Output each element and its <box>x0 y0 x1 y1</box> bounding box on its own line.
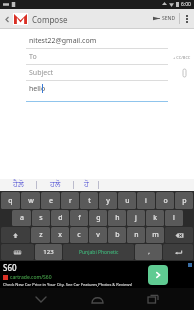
staticText: ਹੋ <box>84 181 89 189</box>
button[interactable]: t <box>80 192 98 209</box>
staticText: nitest22@gmail.com <box>29 36 97 46</box>
button[interactable]: Subject <box>0 65 194 81</box>
staticText: ਹਲੋ <box>50 181 61 189</box>
button[interactable]: ਹਲੋ <box>37 179 73 191</box>
button[interactable]: Attach file <box>179 68 189 78</box>
button[interactable]: , <box>135 244 162 260</box>
staticText: S60 <box>3 262 17 273</box>
staticText: s <box>39 213 43 223</box>
staticText: h <box>115 213 120 223</box>
staticText: c <box>77 230 81 240</box>
staticText: j <box>135 213 137 223</box>
button[interactable]: c <box>70 227 88 243</box>
button[interactable]: f <box>70 210 88 226</box>
button[interactable]: q <box>1 192 20 209</box>
button[interactable]: Switch keyboard <box>1 244 34 260</box>
staticText: 123 <box>43 248 54 256</box>
button[interactable]: p <box>175 192 193 209</box>
button[interactable]: To <box>0 49 194 65</box>
button[interactable]: d <box>51 210 69 226</box>
button[interactable]: z <box>31 227 50 243</box>
staticText: f <box>78 213 81 223</box>
button[interactable]: u <box>118 192 136 209</box>
button[interactable]: More options <box>180 9 194 28</box>
staticText: n <box>134 230 139 240</box>
button[interactable]: Back <box>2 14 12 24</box>
staticText: t <box>88 196 91 206</box>
staticText: a <box>20 213 24 223</box>
staticText: y <box>106 196 110 206</box>
button[interactable]: Enter <box>163 244 193 260</box>
staticText: x <box>58 230 62 240</box>
button[interactable]: n <box>127 227 145 243</box>
staticText: 6:00 <box>181 1 191 8</box>
button[interactable]: Punjabi Phonetic <box>63 244 134 260</box>
staticText: m <box>152 230 159 240</box>
button[interactable]: o <box>156 192 174 209</box>
button[interactable]: g <box>89 210 107 226</box>
button[interactable]: Open ad <box>148 265 168 285</box>
staticText: Subject <box>29 68 54 78</box>
staticText: p <box>182 196 187 206</box>
staticText: l <box>173 213 175 223</box>
staticText: u <box>125 196 130 206</box>
staticText: d <box>58 213 63 223</box>
button[interactable]: Delete <box>165 227 193 243</box>
button[interactable]: s <box>32 210 50 226</box>
button[interactable]: v <box>89 227 107 243</box>
staticText: Compose <box>32 14 68 25</box>
button[interactable]: nitest22@gmail.com <box>0 33 194 49</box>
button[interactable]: m <box>146 227 164 243</box>
staticText: g <box>96 213 101 223</box>
staticText: hello <box>29 84 46 94</box>
button[interactable]: y <box>99 192 117 209</box>
button[interactable]: Home <box>82 288 112 310</box>
button[interactable]: l <box>165 210 183 226</box>
staticText: SEND <box>162 15 176 22</box>
button[interactable]: ਹੋ <box>74 179 98 191</box>
staticText: e <box>49 196 53 206</box>
button[interactable]: b <box>108 227 126 243</box>
staticText: k <box>153 213 157 223</box>
staticText: To <box>29 52 37 62</box>
button[interactable]: e <box>41 192 60 209</box>
staticText: w <box>28 196 34 206</box>
staticText: b <box>115 230 120 240</box>
button[interactable]: x <box>51 227 69 243</box>
button[interactable]: Recents <box>138 288 168 310</box>
button[interactable]: k <box>146 210 164 226</box>
staticText: , <box>148 248 150 256</box>
button[interactable]: r <box>61 192 79 209</box>
staticText: v <box>96 230 100 240</box>
staticText: o <box>163 196 168 206</box>
button[interactable]: i <box>137 192 155 209</box>
button[interactable]: w <box>21 192 40 209</box>
button[interactable]: j <box>127 210 145 226</box>
staticText: i <box>145 196 147 206</box>
button[interactable]: Shift <box>1 227 30 243</box>
button[interactable]: h <box>108 210 126 226</box>
staticText: Check New Car Price in Your City. See Ca… <box>3 282 133 287</box>
staticText: q <box>8 196 13 206</box>
button[interactable]: Back <box>26 288 56 310</box>
button[interactable]: 123 <box>35 244 62 260</box>
button[interactable]: ਹੈਲ਼ੋ <box>0 179 36 191</box>
staticText: r <box>69 196 72 206</box>
button[interactable]: a <box>12 210 31 226</box>
staticText: Punjabi Phonetic <box>79 249 119 256</box>
staticText: + CC/BCC <box>173 55 191 60</box>
button[interactable]: SEND <box>150 9 179 28</box>
staticText: z <box>39 230 43 240</box>
staticText: cartrade.com/S60 <box>10 274 52 281</box>
button[interactable]: hello <box>0 81 194 102</box>
staticText: ਹੈਲ਼ੋ <box>13 181 24 189</box>
